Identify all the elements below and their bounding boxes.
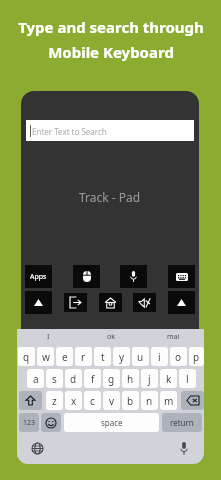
staticText: k [166, 372, 172, 386]
button[interactable]: r [75, 347, 92, 366]
staticText: ok [107, 332, 115, 342]
staticText: v [109, 394, 115, 408]
staticText: s [52, 372, 57, 386]
staticText: mai [167, 332, 180, 342]
staticText: m [164, 394, 174, 408]
button[interactable]: I [17, 329, 80, 345]
button[interactable]: mai [142, 329, 204, 345]
staticText: w [42, 350, 50, 364]
staticText: u [137, 350, 144, 364]
button[interactable]: q [18, 347, 35, 366]
staticText: c [90, 394, 95, 408]
button[interactable]: Shift [19, 391, 42, 410]
staticText: n [146, 394, 153, 408]
staticText: b [127, 394, 134, 408]
staticText: f [91, 372, 95, 386]
button[interactable]: b [122, 391, 139, 410]
button[interactable]: p [189, 347, 204, 366]
button[interactable]: d [65, 369, 82, 388]
button[interactable]: Scroll up right [168, 291, 195, 314]
button[interactable]: x [65, 391, 82, 410]
button[interactable]: m [160, 391, 177, 410]
staticText: Type and search through [18, 17, 204, 37]
button[interactable]: Apps [25, 265, 52, 288]
staticText: Track - Pad [79, 189, 141, 205]
button[interactable]: i [151, 347, 168, 366]
button[interactable]: c [84, 391, 101, 410]
button[interactable]: Change language [27, 438, 47, 458]
staticText: e [62, 350, 68, 364]
button[interactable]: h [122, 369, 139, 388]
button[interactable]: Mouse [73, 265, 100, 288]
button[interactable]: w [37, 347, 54, 366]
button[interactable]: y [113, 347, 130, 366]
button[interactable]: Keyboard [168, 265, 195, 288]
button[interactable]: a [27, 369, 44, 388]
button[interactable]: u [132, 347, 149, 366]
staticText: x [71, 394, 77, 408]
button[interactable]: f [84, 369, 101, 388]
staticText: h [127, 372, 134, 386]
button[interactable]: return [162, 413, 202, 432]
button[interactable]: n [141, 391, 158, 410]
staticText: return [170, 417, 194, 428]
staticText: p [193, 350, 200, 364]
button[interactable]: Voice input [174, 438, 194, 458]
button[interactable]: 123 [19, 413, 39, 432]
button[interactable]: Enter Text to Search [26, 120, 194, 141]
staticText: I [47, 332, 50, 342]
staticText: z [52, 394, 57, 408]
staticText: r [81, 350, 86, 364]
staticText: g [108, 372, 115, 386]
staticText: Enter Text to Search [32, 126, 107, 137]
button[interactable]: k [160, 369, 177, 388]
staticText: i [158, 350, 161, 364]
staticText: q [23, 350, 30, 364]
staticText: j [148, 372, 151, 386]
button[interactable]: t [94, 347, 111, 366]
button[interactable]: j [141, 369, 158, 388]
button[interactable]: space [64, 413, 159, 432]
staticText: Apps [30, 272, 47, 282]
button[interactable]: l [179, 369, 196, 388]
button[interactable]: Home [99, 293, 122, 312]
button[interactable]: e [56, 347, 73, 366]
button[interactable]: z [46, 391, 63, 410]
staticText: space [101, 417, 123, 428]
button[interactable]: Microphone [120, 265, 147, 288]
staticText: t [101, 350, 105, 364]
button[interactable]: v [103, 391, 120, 410]
button[interactable]: Backspace [181, 391, 204, 410]
staticText: Mobile Keyboard [48, 42, 174, 62]
button[interactable]: g [103, 369, 120, 388]
button[interactable]: Emoji [41, 413, 61, 432]
button[interactable]: Exit [64, 293, 87, 312]
button[interactable]: Mute [133, 293, 156, 312]
staticText: o [175, 350, 182, 364]
staticText: l [186, 372, 189, 386]
staticText: d [70, 372, 77, 386]
button[interactable]: s [46, 369, 63, 388]
button[interactable]: ok [80, 329, 142, 345]
staticText: 123 [23, 418, 36, 428]
staticText: a [33, 372, 39, 386]
button[interactable]: o [170, 347, 187, 366]
staticText: y [119, 350, 125, 364]
button[interactable]: Scroll up [25, 291, 52, 314]
